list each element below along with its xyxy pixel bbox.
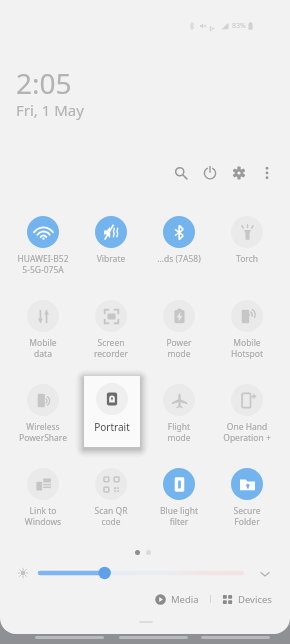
button[interactable]: Search — [168, 160, 194, 186]
staticText: Vibrate — [77, 253, 145, 265]
staticText: Flight mode — [145, 421, 213, 443]
staticText: Portrait — [77, 421, 145, 433]
staticText: Torch — [213, 253, 281, 265]
button[interactable]: One Hand Operation + — [213, 384, 281, 443]
button[interactable]: HUAWEI-B52 5-5G-075A — [9, 216, 77, 275]
staticText: 2:05 — [16, 64, 72, 102]
staticText: Devices — [238, 593, 272, 606]
staticText: Portrait — [84, 420, 140, 434]
staticText: Scan QR code — [77, 505, 145, 527]
button[interactable]: Mobile Hotspot — [213, 300, 281, 359]
button[interactable]: Portrait — [77, 384, 145, 433]
button[interactable]: Devices — [219, 593, 275, 606]
staticText: Blue light filter — [145, 505, 213, 527]
button[interactable]: More options — [254, 160, 280, 186]
staticText: 83% — [232, 21, 246, 31]
button[interactable]: Flight mode — [145, 384, 213, 443]
button[interactable]: Blue light filter — [145, 468, 213, 527]
staticText: Secure Folder — [213, 505, 281, 527]
staticText: Fri, 1 May — [16, 100, 84, 120]
button[interactable]: …ds (7A58) — [145, 216, 213, 265]
button[interactable]: Settings — [226, 160, 252, 186]
staticText: Power mode — [145, 337, 213, 359]
button[interactable]: Wireless PowerShare — [9, 384, 77, 443]
button[interactable]: Screen recorder — [77, 300, 145, 359]
staticText: Screen recorder — [77, 337, 145, 359]
button[interactable]: Secure Folder — [213, 468, 281, 527]
staticText: …ds (7A58) — [145, 253, 213, 265]
button[interactable]: Power — [197, 160, 223, 186]
button[interactable]: Scan QR code — [77, 468, 145, 527]
staticText: HUAWEI-B52 5-5G-075A — [9, 253, 77, 275]
button[interactable]: Portrait — [84, 376, 140, 447]
staticText: Mobile data — [9, 337, 77, 359]
staticText: Link to Windows — [9, 505, 77, 527]
staticText: Media — [171, 593, 199, 606]
button[interactable]: Auto brightness — [15, 565, 31, 581]
button[interactable]: Vibrate — [77, 216, 145, 265]
button[interactable]: Mobile data — [9, 300, 77, 359]
button[interactable]: Link to Windows — [9, 468, 77, 527]
button[interactable]: Expand — [256, 565, 274, 583]
button[interactable]: Torch — [213, 216, 281, 265]
button[interactable]: Media — [152, 593, 202, 606]
staticText: One Hand Operation + — [213, 421, 281, 443]
staticText: Wireless PowerShare — [9, 421, 77, 443]
button[interactable]: Brightness — [36, 565, 246, 581]
button[interactable]: Power mode — [145, 300, 213, 359]
staticText: Mobile Hotspot — [213, 337, 281, 359]
